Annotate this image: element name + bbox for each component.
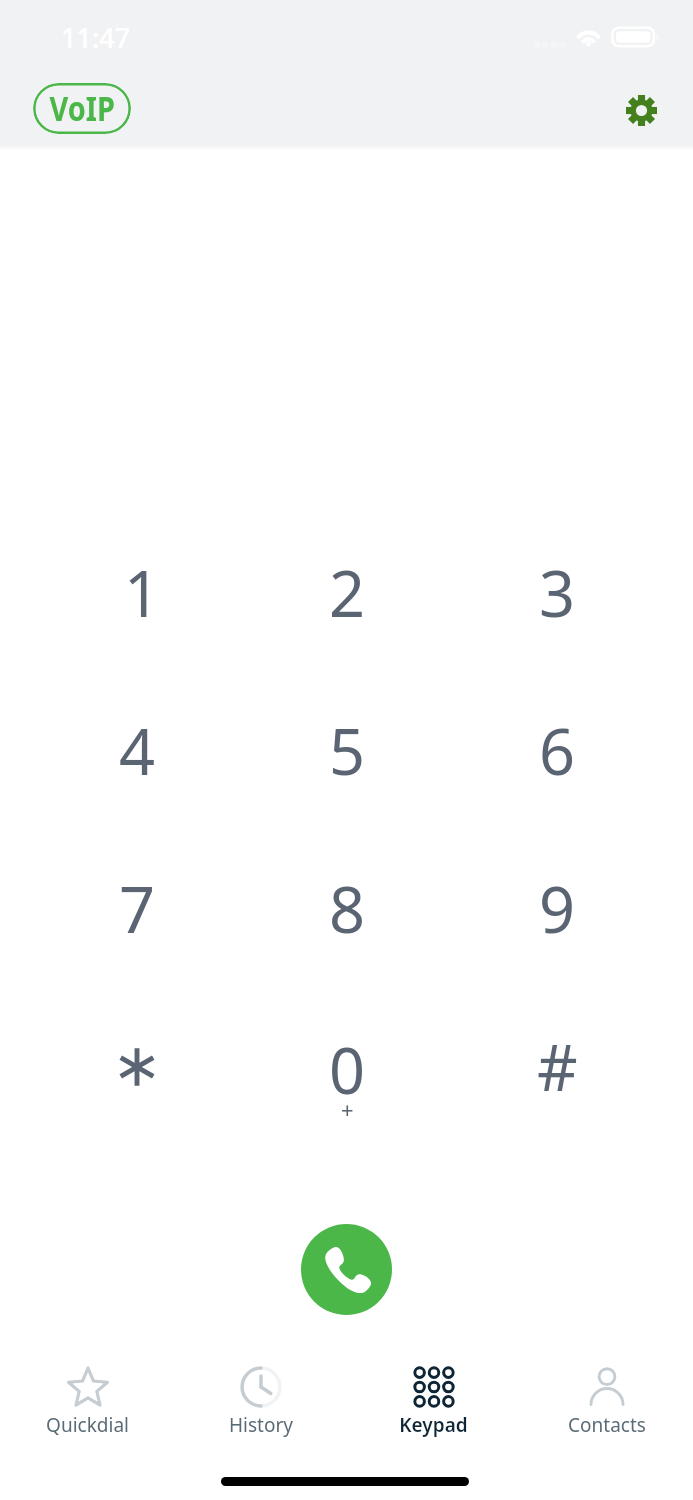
staticText: 7 bbox=[119, 866, 156, 952]
button[interactable]: History bbox=[174, 1360, 347, 1446]
staticText: 4 bbox=[119, 708, 156, 794]
button[interactable]: 2 bbox=[242, 514, 452, 672]
button[interactable]: VoIP bbox=[33, 83, 131, 134]
button[interactable]: Star bbox=[32, 988, 242, 1146]
button[interactable]: Settings bbox=[617, 86, 665, 134]
button[interactable]: 8 bbox=[242, 830, 452, 988]
button[interactable]: Contacts bbox=[520, 1360, 693, 1446]
staticText: 3 bbox=[539, 550, 576, 636]
button[interactable]: 1 bbox=[32, 514, 242, 672]
button[interactable]: 4 bbox=[32, 672, 242, 830]
button[interactable]: 0 bbox=[242, 988, 452, 1146]
staticText: + bbox=[341, 1094, 354, 1124]
staticText: VoIP bbox=[49, 85, 115, 131]
staticText: 9 bbox=[539, 866, 576, 952]
button[interactable]: 5 bbox=[242, 672, 452, 830]
button[interactable]: # bbox=[452, 988, 662, 1146]
button[interactable]: Quickdial bbox=[0, 1360, 174, 1446]
staticText: 2 bbox=[329, 550, 366, 636]
staticText: 11:47 bbox=[61, 19, 131, 56]
staticText: 1 bbox=[124, 550, 161, 636]
staticText: Quickdial bbox=[46, 1412, 129, 1438]
button[interactable]: Keypad bbox=[347, 1360, 520, 1446]
staticText: Contacts bbox=[568, 1412, 646, 1438]
staticText: 8 bbox=[329, 866, 366, 952]
staticText: 5 bbox=[329, 708, 366, 794]
staticText: 0 bbox=[329, 1027, 366, 1113]
staticText: # bbox=[537, 1024, 578, 1110]
staticText: 6 bbox=[539, 708, 576, 794]
button[interactable]: 3 bbox=[452, 514, 662, 672]
staticText: Keypad bbox=[399, 1412, 468, 1438]
staticText: History bbox=[229, 1412, 293, 1438]
button[interactable]: 6 bbox=[452, 672, 662, 830]
button[interactable]: Call bbox=[301, 1224, 392, 1315]
button[interactable]: 9 bbox=[452, 830, 662, 988]
button[interactable]: 7 bbox=[32, 830, 242, 988]
